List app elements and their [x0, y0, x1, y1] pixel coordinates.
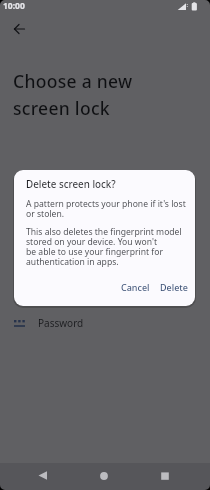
button[interactable]	[84, 463, 124, 490]
button[interactable]: Password	[0, 310, 210, 336]
button[interactable]	[8, 19, 30, 39]
staticText: 10:00	[3, 0, 25, 12]
button[interactable]: Cancel	[117, 278, 154, 296]
staticText: Delete	[160, 281, 188, 293]
staticText: Cancel	[121, 281, 150, 293]
button[interactable]: Delete	[154, 278, 194, 296]
staticText: Password	[38, 316, 84, 330]
staticText: Choose a new screen lock	[13, 69, 133, 120]
button[interactable]	[23, 463, 63, 490]
staticText: This also deletes the fingerprint model …	[26, 226, 182, 267]
button[interactable]	[145, 463, 185, 490]
staticText: Delete screen lock?	[26, 178, 116, 191]
staticText: A pattern protects your phone if it's lo…	[26, 198, 186, 219]
